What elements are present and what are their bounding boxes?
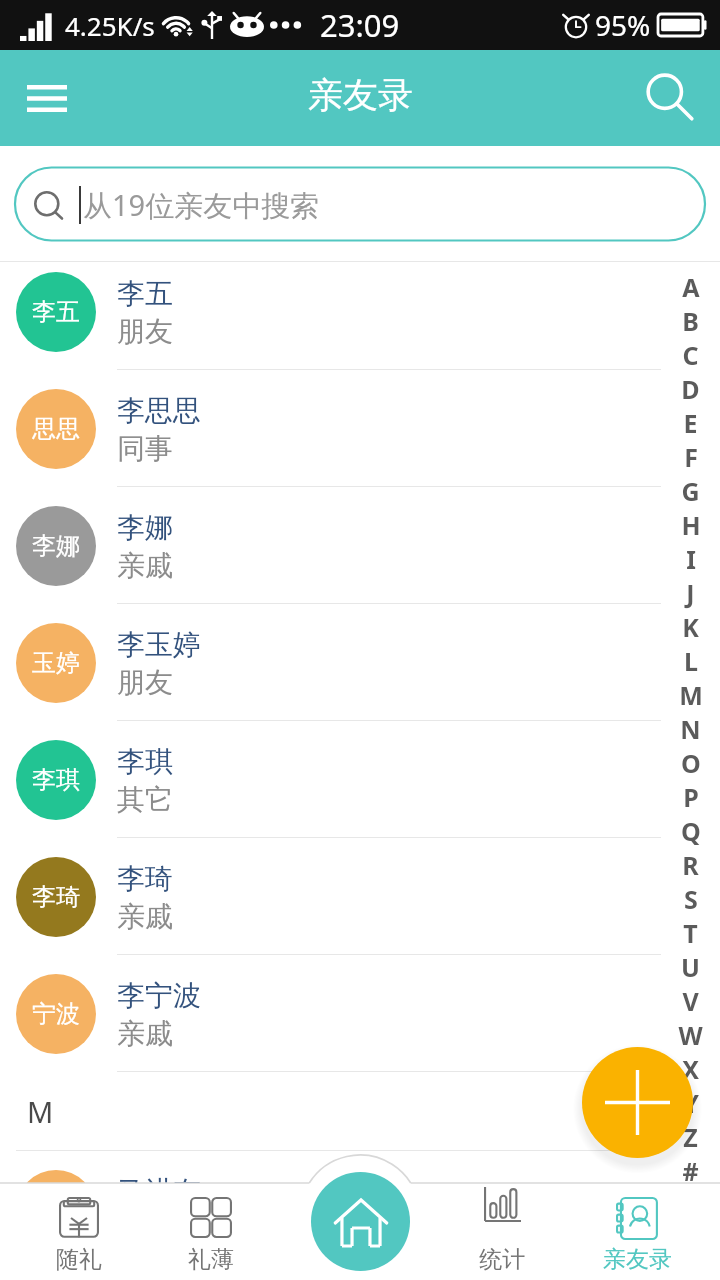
staticText: 同事 — [117, 431, 173, 466]
staticText: Y — [683, 1086, 699, 1120]
staticText: 亲戚 — [117, 1016, 173, 1051]
staticText: 亲友录 — [603, 1245, 672, 1274]
staticText: R — [682, 848, 699, 882]
button[interactable]: Home — [311, 1172, 410, 1271]
staticText: F — [684, 440, 698, 474]
staticText: V — [682, 984, 699, 1018]
staticText: C — [682, 338, 699, 372]
button[interactable]: 李琪 — [0, 721, 720, 838]
button[interactable]: 玉婷 — [0, 604, 720, 721]
button[interactable]: 统计 — [430, 1183, 574, 1280]
staticText: 95% — [595, 6, 651, 44]
staticText: 李思思 — [117, 393, 201, 428]
button[interactable]: 李琦 — [0, 838, 720, 955]
staticText: 宁波 — [32, 999, 80, 1029]
staticText: 李玉婷 — [117, 627, 201, 662]
button[interactable]: 礼薄 — [139, 1183, 283, 1280]
staticText: W — [678, 1018, 703, 1052]
staticText: O — [681, 746, 701, 780]
staticText: 李娜 — [117, 510, 173, 545]
staticText: E — [683, 406, 698, 440]
staticText: # — [682, 1154, 699, 1188]
staticText: 其它 — [117, 782, 173, 817]
staticText: 李五 — [32, 297, 80, 327]
button[interactable]: 随礼 — [7, 1183, 151, 1280]
staticText: 李琪 — [32, 765, 80, 795]
staticText: 从19位亲友中搜索 — [83, 185, 320, 225]
staticText: 统计 — [479, 1245, 525, 1274]
staticText: 马进有 — [117, 1174, 201, 1209]
staticText: U — [681, 950, 700, 984]
staticText: 23:09 — [320, 4, 400, 46]
button[interactable]: Menu — [0, 50, 94, 146]
staticText: 礼薄 — [188, 1245, 234, 1274]
staticText: L — [684, 644, 698, 678]
staticText: B — [682, 304, 699, 338]
staticText: Z — [683, 1120, 698, 1154]
staticText: 李五 — [117, 276, 173, 311]
staticText: K — [682, 610, 699, 644]
staticText: 李琪 — [117, 744, 173, 779]
staticText: T — [683, 916, 698, 950]
button[interactable]: 进有 — [0, 1151, 720, 1268]
staticText: N — [680, 712, 701, 746]
staticText: A — [682, 270, 700, 304]
button[interactable]: 李五 — [0, 262, 720, 370]
staticText: 朋友 — [117, 314, 173, 349]
button[interactable]: Add contact — [582, 1047, 693, 1158]
button[interactable]: 思思 — [0, 370, 720, 487]
staticText: 进有 — [32, 1195, 80, 1225]
button[interactable]: 宁波 — [0, 955, 720, 1072]
staticText: P — [683, 780, 699, 814]
button[interactable]: 亲友录 — [565, 1183, 709, 1280]
staticText: M — [679, 678, 703, 712]
staticText: 随礼 — [56, 1245, 102, 1274]
button[interactable]: 从19位亲友中搜索 — [15, 168, 705, 241]
staticText: G — [681, 474, 700, 508]
staticText: I — [686, 542, 696, 576]
button[interactable]: Search — [620, 50, 720, 146]
staticText: Q — [681, 814, 701, 848]
staticText: M — [27, 1092, 54, 1131]
staticText: 亲戚 — [117, 548, 173, 583]
staticText: 玉婷 — [32, 648, 80, 678]
staticText: J — [686, 576, 695, 610]
staticText: H — [681, 508, 701, 542]
staticText: 亲戚 — [117, 899, 173, 934]
staticText: 亲友录 — [308, 73, 413, 117]
staticText: 李琦 — [32, 882, 80, 912]
staticText: 李琦 — [117, 861, 173, 896]
staticText: X — [682, 1052, 699, 1086]
staticText: S — [684, 882, 698, 916]
staticText: D — [681, 372, 700, 406]
button[interactable]: 李娜 — [0, 487, 720, 604]
staticText: 李娜 — [32, 531, 80, 561]
staticText: 4.25K/s — [65, 8, 155, 43]
staticText: 李宁波 — [117, 978, 201, 1013]
staticText: 思思 — [32, 414, 80, 444]
staticText: 朋友 — [117, 665, 173, 700]
